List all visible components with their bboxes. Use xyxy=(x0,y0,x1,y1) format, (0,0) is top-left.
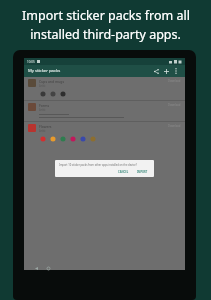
button[interactable]: Cups and mugs xyxy=(24,77,185,100)
button[interactable]: Download xyxy=(168,103,181,107)
staticText: Import 10 sticker packs from other apps … xyxy=(59,163,137,167)
button[interactable]: Add sticker pack xyxy=(161,66,171,76)
staticText: Download xyxy=(168,124,181,128)
button[interactable]: Flowers xyxy=(24,122,185,145)
button[interactable]: IMPORT xyxy=(135,170,150,174)
staticText: Flowers xyxy=(39,124,52,129)
staticText: CANCEL xyxy=(118,170,129,174)
button[interactable]: Back xyxy=(33,265,40,272)
staticText: installed third-party apps. xyxy=(30,26,181,43)
button[interactable]: CANCEL xyxy=(116,170,131,174)
staticText: Artist xyxy=(39,108,46,112)
staticText: 10:05 xyxy=(27,60,35,64)
staticText: Import sticker packs from all xyxy=(22,7,190,24)
button[interactable]: Home xyxy=(45,265,52,272)
staticText: Artist xyxy=(39,129,46,133)
button[interactable]: Forms xyxy=(24,101,185,121)
button[interactable]: Share xyxy=(151,66,161,76)
staticText: Download xyxy=(168,79,181,83)
button[interactable]: Download xyxy=(168,124,181,128)
button[interactable]: More options xyxy=(171,66,181,76)
staticText: My sticker packs xyxy=(28,68,61,74)
button[interactable]: Download xyxy=(168,79,181,83)
staticText: Forms xyxy=(39,103,50,108)
staticText: Artist xyxy=(39,84,46,88)
staticText: Download xyxy=(168,103,181,107)
staticText: Cups and mugs xyxy=(39,79,65,84)
staticText: IMPORT xyxy=(137,170,148,174)
